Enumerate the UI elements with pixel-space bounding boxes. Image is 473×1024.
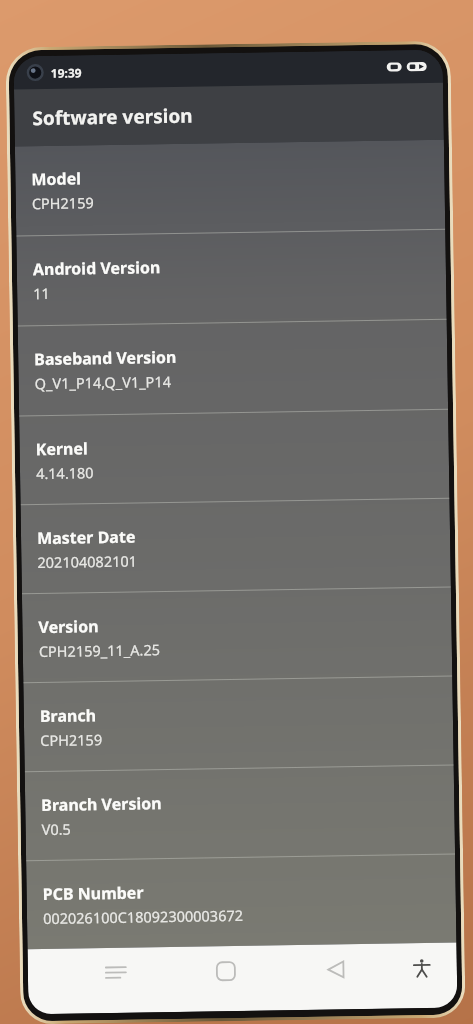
staticText: Software version: [32, 103, 194, 131]
staticText: 11: [33, 283, 50, 303]
staticText: Model: [31, 167, 82, 190]
staticText: Version: [38, 615, 100, 638]
button[interactable]: Master Date: [20, 499, 451, 593]
button[interactable]: PCB Number: [26, 855, 456, 949]
staticText: Baseband Version: [34, 346, 177, 370]
staticText: Kernel: [35, 437, 89, 460]
staticText: Android Version: [33, 256, 161, 280]
button[interactable]: Branch Version: [25, 766, 455, 860]
staticText: PCB Number: [42, 881, 144, 905]
button[interactable]: Version: [22, 588, 452, 682]
staticText: Branch Version: [41, 792, 162, 816]
staticText: Master Date: [37, 526, 136, 549]
staticText: CPH2159_11_A.25: [39, 639, 161, 661]
button[interactable]: Branch: [23, 677, 454, 771]
staticText: Q_V1_P14,Q_V1_P14: [34, 371, 172, 393]
staticText: 202104082101: [37, 550, 138, 572]
staticText: 4.14.180: [36, 462, 94, 483]
staticText: CPH2159: [40, 729, 102, 750]
staticText: CPH2159: [32, 192, 94, 213]
staticText: 002026100C18092300003672: [43, 905, 243, 928]
button[interactable]: Accessibility: [400, 947, 443, 989]
staticText: V0.5: [41, 819, 72, 839]
button[interactable]: Recent apps: [95, 952, 137, 994]
button[interactable]: Back: [314, 948, 357, 991]
staticText: Branch: [40, 704, 97, 727]
button[interactable]: Model: [15, 140, 445, 235]
button[interactable]: Baseband Version: [18, 320, 448, 415]
button[interactable]: Kernel: [19, 410, 449, 504]
button[interactable]: Home: [205, 950, 247, 993]
button[interactable]: Android Version: [16, 230, 447, 325]
staticText: 19:39: [51, 64, 82, 81]
button[interactable]: Software version: [14, 83, 444, 146]
